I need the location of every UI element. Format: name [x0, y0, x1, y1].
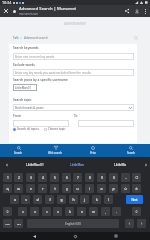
button[interactable]: Enter any key words you want excluded fr…: [15, 69, 132, 76]
button[interactable]: ü: [121, 184, 130, 193]
button[interactable]: -: [121, 173, 130, 182]
button[interactable]: w: [14, 184, 23, 193]
button[interactable]: Shift: [132, 207, 141, 216]
staticText: 1: [7, 176, 9, 180]
button[interactable]: Choose topic: [44, 127, 66, 131]
button[interactable]: Next: [126, 195, 143, 204]
button[interactable]: r: [38, 184, 47, 193]
button[interactable]: 3: [26, 173, 35, 182]
button[interactable]: More suggestions: [142, 157, 150, 172]
button[interactable]: [78, 120, 134, 127]
staticText: Choose topic: [48, 127, 66, 131]
staticText: Search all topics: [17, 127, 39, 131]
staticText: ü: [124, 186, 127, 191]
staticText: s: [25, 197, 27, 202]
button[interactable]: v: [53, 207, 62, 216]
button[interactable]: More options: [141, 5, 149, 17]
button[interactable]: LittleMan01: [15, 84, 35, 91]
button[interactable]: 5: [50, 173, 59, 182]
button[interactable]: Download: [132, 5, 141, 17]
staticText: Talk: [13, 36, 19, 40]
button[interactable]: j: [80, 195, 89, 204]
button[interactable]: l: [104, 195, 113, 204]
staticText: j: [84, 197, 85, 202]
staticText: ›: [19, 36, 24, 40]
button[interactable]: Back: [27, 232, 41, 240]
button[interactable]: Previous suggestions: [0, 157, 14, 172]
button[interactable]: 0: [109, 173, 118, 182]
button[interactable]: Shift: [3, 207, 12, 216]
staticText: ö: [135, 186, 138, 191]
button[interactable]: Search: [133, 35, 139, 41]
button[interactable]: 1: [3, 173, 12, 182]
staticText: q: [6, 186, 9, 191]
staticText: To: [74, 114, 78, 118]
button[interactable]: k: [92, 195, 101, 204]
staticText: Enter one or more key words: [15, 55, 55, 59]
button[interactable]: 2: [14, 173, 23, 182]
button[interactable]: y: [62, 184, 71, 193]
button[interactable]: Web search: [37, 144, 74, 157]
button[interactable]: Next field: [137, 219, 146, 228]
button[interactable]: LittleMa: [99, 157, 142, 172]
button[interactable]: 9: [97, 173, 106, 182]
button[interactable]: Share: [122, 5, 132, 17]
button[interactable]: e: [26, 184, 35, 193]
button[interactable]: s: [21, 195, 30, 204]
button[interactable]: [13, 120, 69, 127]
staticText: Both threads & posts: [15, 106, 44, 110]
button[interactable]: 4: [38, 173, 47, 182]
button[interactable]: p: [109, 184, 118, 193]
button[interactable]: LittleMan01: [14, 157, 56, 172]
staticText: -: [125, 176, 127, 180]
button[interactable]: Search all topics: [13, 127, 39, 131]
button[interactable]: d: [33, 195, 42, 204]
staticText: 10:34: [2, 0, 12, 5]
button[interactable]: t: [50, 184, 59, 193]
button[interactable]: LittleMan: [56, 157, 99, 172]
button[interactable]: .: [112, 207, 121, 216]
staticText: u: [76, 186, 79, 191]
staticText: LittleMa: [114, 163, 127, 167]
button[interactable]: n: [77, 207, 86, 216]
button[interactable]: Previous: [125, 219, 134, 228]
staticText: w: [17, 186, 20, 191]
button[interactable]: z: [18, 207, 27, 216]
button[interactable]: Close: [0, 5, 11, 17]
staticText: English (UK): [65, 222, 81, 226]
button[interactable]: 7: [73, 173, 82, 182]
button[interactable]: u: [73, 184, 82, 193]
staticText: r: [42, 186, 44, 191]
button[interactable]: g: [57, 195, 66, 204]
button[interactable]: f: [45, 195, 54, 204]
button[interactable]: Search: [0, 144, 37, 157]
button[interactable]: Ctrl: [3, 219, 12, 228]
staticText: Price: [90, 151, 97, 155]
button[interactable]: English (UK): [27, 219, 119, 228]
button[interactable]: b: [65, 207, 74, 216]
button[interactable]: 8: [85, 173, 94, 182]
button[interactable]: Enter one or more key words: [15, 53, 132, 60]
button[interactable]: !#1: [14, 219, 23, 228]
button[interactable]: 6: [62, 173, 71, 182]
button[interactable]: m: [89, 207, 98, 216]
staticText: Exclude words: [13, 63, 35, 67]
button[interactable]: Home: [68, 232, 82, 240]
button[interactable]: q: [3, 184, 12, 193]
button[interactable]: a: [10, 195, 19, 204]
button[interactable]: Recents: [109, 232, 123, 240]
button[interactable]: i: [85, 184, 94, 193]
staticText: a: [14, 197, 16, 202]
button[interactable]: h: [69, 195, 78, 204]
button[interactable]: Search: [112, 144, 150, 157]
button[interactable]: c: [42, 207, 51, 216]
button[interactable]: Price: [74, 144, 112, 157]
button[interactable]: ö: [132, 184, 141, 193]
button[interactable]: x: [30, 207, 39, 216]
button[interactable]: Both threads & posts: [15, 104, 132, 111]
staticText: f: [49, 197, 51, 202]
button[interactable]: ,: [101, 207, 110, 216]
button[interactable]: Backspace: [132, 173, 141, 182]
button[interactable]: o: [97, 184, 106, 193]
button[interactable]: Talk: [13, 36, 48, 40]
